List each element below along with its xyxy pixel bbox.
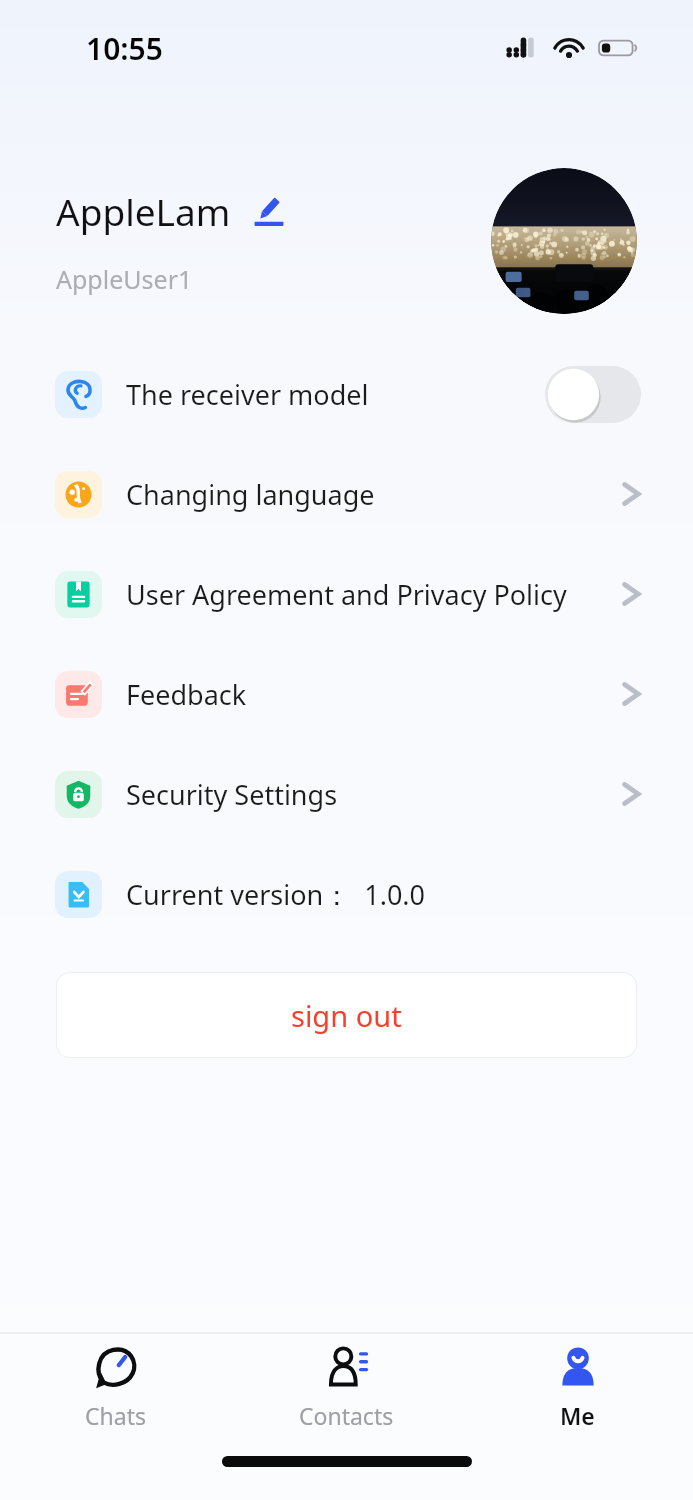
button[interactable]: Edit name — [251, 193, 287, 229]
button[interactable]: sign out — [56, 972, 637, 1058]
staticText: AppleUser1 — [56, 262, 193, 296]
button[interactable]: Receiver mode toggle, off — [545, 366, 641, 423]
button[interactable]: The receiver model — [0, 344, 693, 444]
staticText: AppleLam — [56, 186, 231, 236]
staticText: Chats — [85, 1400, 146, 1431]
staticText: Contacts — [299, 1400, 394, 1431]
button[interactable]: Current version： 1.0.0 — [0, 844, 693, 944]
staticText: 10:55 — [86, 28, 163, 69]
button[interactable]: Profile photo — [491, 168, 637, 314]
staticText: Current version： 1.0.0 — [126, 876, 641, 913]
button[interactable]: Feedback — [0, 644, 693, 744]
staticText: Security Settings — [126, 776, 621, 813]
staticText: The receiver model — [126, 376, 545, 413]
button[interactable]: Me — [462, 1344, 693, 1431]
button[interactable]: Contacts — [231, 1344, 462, 1431]
staticText: User Agreement and Privacy Policy — [126, 576, 621, 613]
button[interactable]: Security Settings — [0, 744, 693, 844]
staticText: Changing language — [126, 476, 621, 513]
button[interactable]: Chats — [0, 1344, 231, 1431]
button[interactable]: User Agreement and Privacy Policy — [0, 544, 693, 644]
staticText: Me — [560, 1400, 595, 1431]
staticText: Feedback — [126, 676, 621, 713]
button[interactable]: Changing language — [0, 444, 693, 544]
staticText: sign out — [291, 996, 402, 1035]
